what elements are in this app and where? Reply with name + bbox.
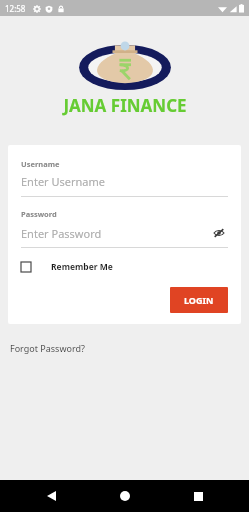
button[interactable]: Back xyxy=(40,485,62,507)
staticText: Enter Username xyxy=(21,174,106,189)
button[interactable]: Forgot Password? xyxy=(8,340,87,356)
staticText: 12:58 xyxy=(5,3,26,14)
button[interactable]: Show password xyxy=(210,224,228,242)
button[interactable]: Enter Password xyxy=(21,226,210,241)
staticText: Username xyxy=(21,159,60,169)
staticText: Enter Password xyxy=(21,226,102,241)
button[interactable]: LOGIN xyxy=(170,287,228,313)
staticText: LOGIN xyxy=(184,294,214,306)
staticText: JANA FINANCE xyxy=(63,94,187,117)
staticText: Forgot Password? xyxy=(10,342,85,354)
staticText: Password xyxy=(21,209,57,219)
button[interactable]: Recent apps xyxy=(187,485,209,507)
staticText: Remember Me xyxy=(51,261,113,273)
button[interactable]: Remember Me xyxy=(21,259,113,275)
button[interactable]: Enter Username xyxy=(21,174,228,189)
button[interactable]: Home xyxy=(114,485,136,507)
